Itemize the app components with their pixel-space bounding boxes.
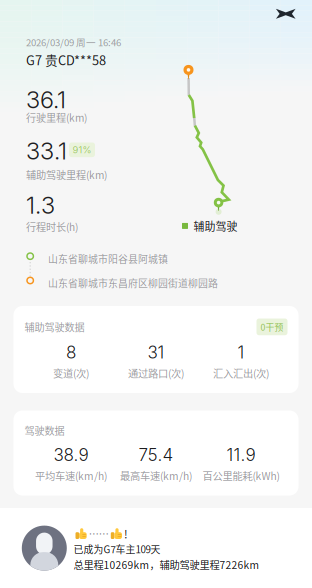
staticText: 8 — [66, 342, 76, 363]
staticText: 百公里能耗(kWh) — [202, 468, 279, 483]
button[interactable]: Share — [266, 0, 305, 28]
staticText: 总里程10269km，辅助驾驶里程7226km — [73, 557, 259, 572]
staticText: 1.3 — [26, 191, 55, 219]
staticText: 平均车速(km/h) — [35, 468, 107, 483]
staticText: 行程时长(h) — [26, 219, 78, 234]
staticText: 通过路口(次) — [128, 366, 184, 380]
staticText: 1 — [237, 342, 244, 363]
staticText: 汇入汇出(次) — [213, 366, 269, 380]
staticText: 31 — [147, 342, 164, 363]
staticText: G7 贵CD***58 — [26, 50, 106, 69]
staticText: 75.4 — [138, 444, 173, 465]
staticText: 山东省聊城市阳谷县阿城镇 — [48, 252, 168, 266]
staticText: 辅助驾驶里程(km) — [26, 167, 107, 182]
staticText: 2026/03/09 周一 16:46 — [26, 35, 121, 49]
staticText: 行驶里程(km) — [26, 110, 87, 125]
staticText: 0干预 — [260, 320, 283, 333]
staticText: 已成为G7车主109天 — [73, 542, 160, 556]
staticText: 辅助驾驶 — [193, 218, 237, 234]
staticText: 36.1 — [26, 85, 66, 114]
staticText: 38.9 — [53, 444, 88, 465]
staticText: 变道(次) — [53, 366, 89, 380]
staticText: 驾驶数据 — [24, 423, 64, 438]
staticText: 91% — [72, 144, 91, 156]
staticText: ! — [124, 526, 128, 542]
staticText: 33.1 — [26, 137, 67, 165]
staticText: 最高车速(km/h) — [120, 468, 192, 483]
staticText: 山东省聊城市东昌府区柳园街道柳园路 — [48, 276, 218, 290]
staticText: 11.9 — [226, 444, 255, 465]
staticText: …… — [89, 526, 109, 541]
staticText: 辅助驾驶数据 — [24, 319, 84, 334]
